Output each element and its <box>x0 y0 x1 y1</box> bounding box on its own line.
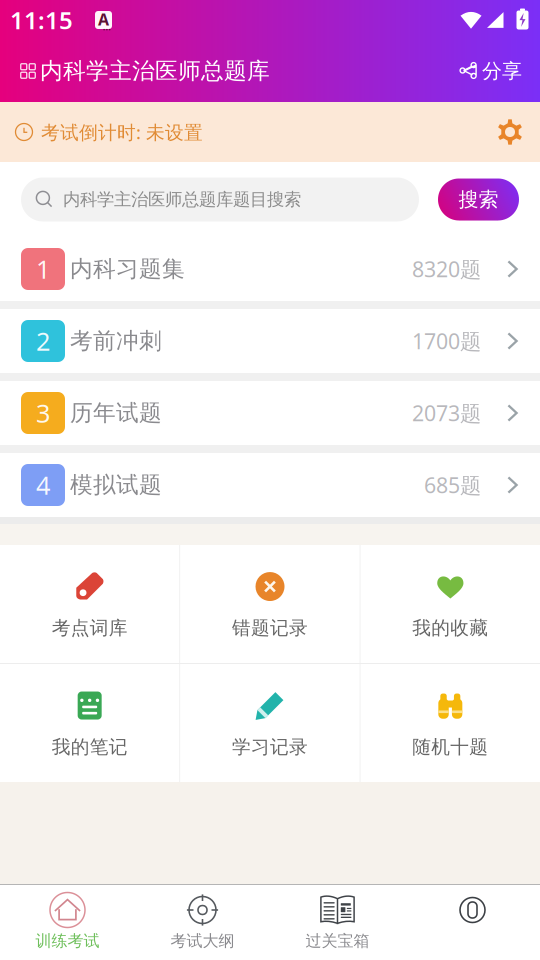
button[interactable]: 训练考试 <box>0 885 135 960</box>
button[interactable]: 我的笔记 <box>0 664 179 782</box>
button[interactable]: 学习记录 <box>180 664 360 782</box>
button[interactable]: 分享 <box>449 49 522 93</box>
staticText: 2073题 <box>412 399 481 427</box>
button[interactable]: 过关宝箱 <box>270 885 405 960</box>
staticText: 4 <box>36 468 50 502</box>
staticText: 685题 <box>424 471 481 499</box>
staticText: A <box>98 9 109 30</box>
staticText: 过关宝箱 <box>305 931 369 951</box>
staticText: 考点词库 <box>52 616 128 639</box>
staticText: 1 <box>36 252 50 286</box>
staticText: 3 <box>36 396 50 430</box>
staticText: 考试倒计时: 未设置 <box>41 120 203 144</box>
button[interactable]: 考试大纲 <box>135 885 270 960</box>
staticText: 我的收藏 <box>412 616 488 639</box>
staticText: 搜索 <box>458 187 498 212</box>
staticText: 错题记录 <box>232 616 308 639</box>
staticText: 学习记录 <box>232 735 308 758</box>
button[interactable]: 我的收藏 <box>361 545 540 663</box>
staticText: 我的笔记 <box>52 735 128 758</box>
button[interactable]: 错题记录 <box>180 545 360 663</box>
button[interactable]: 搜索 <box>438 178 519 220</box>
staticText: 历年试题 <box>70 399 162 427</box>
button[interactable]: 2 <box>0 309 540 373</box>
staticText: 随机十题 <box>412 735 488 758</box>
staticText: 考前冲刺 <box>70 327 162 355</box>
staticText: 模拟试题 <box>70 471 162 499</box>
staticText: 8320题 <box>412 255 481 283</box>
staticText: 内科习题集 <box>70 255 185 283</box>
button[interactable]: 1 <box>0 237 540 301</box>
staticText: 内科学主治医师总题库 <box>40 57 270 85</box>
button[interactable]: 考试倒计时: 未设置 <box>0 102 540 162</box>
button[interactable]: 3 <box>0 381 540 445</box>
staticText: 1700题 <box>412 327 481 355</box>
button[interactable]: 随机十题 <box>361 664 540 782</box>
button[interactable]: 4 <box>0 453 540 517</box>
staticText: 训练考试 <box>35 931 99 951</box>
button[interactable]: 内科学主治医师总题库题目搜索 <box>21 177 419 221</box>
button[interactable]: 我的 <box>405 885 540 960</box>
staticText: 内科学主治医师总题库题目搜索 <box>63 189 301 210</box>
button[interactable]: 考点词库 <box>0 545 179 663</box>
staticText: 分享 <box>482 59 522 83</box>
staticText: 考试大纲 <box>170 931 234 951</box>
staticText: 11:15 <box>10 4 73 36</box>
staticText: 2 <box>36 324 50 358</box>
